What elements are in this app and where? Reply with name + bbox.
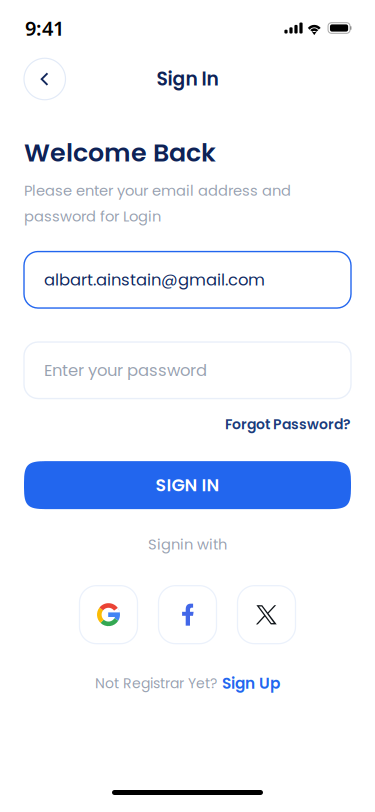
staticText: SIGN IN xyxy=(155,473,219,497)
staticText: 9:41 xyxy=(25,15,64,41)
staticText: Forgot Password? xyxy=(225,414,351,434)
staticText: Please enter your email address and xyxy=(24,180,291,201)
button[interactable]: Sign Up xyxy=(222,673,280,694)
staticText: password for Login xyxy=(24,206,161,226)
button[interactable]: Back xyxy=(24,58,65,100)
staticText: Welcome Back xyxy=(24,135,216,170)
button[interactable]: Forgot Password? xyxy=(225,414,351,434)
button[interactable]: Sign in with Google xyxy=(79,586,137,644)
staticText: Sign Up xyxy=(222,673,280,694)
staticText: Enter your password xyxy=(44,359,207,382)
button[interactable]: Sign in with X xyxy=(237,586,295,644)
staticText: albart.ainstain@gmail.com xyxy=(44,268,265,291)
staticText: Not Registrar Yet? xyxy=(95,674,217,693)
button[interactable]: Sign in with Facebook xyxy=(158,586,216,644)
staticText: Signin with xyxy=(148,534,227,555)
staticText: Sign In xyxy=(156,66,218,92)
button[interactable]: SIGN IN xyxy=(24,461,351,509)
